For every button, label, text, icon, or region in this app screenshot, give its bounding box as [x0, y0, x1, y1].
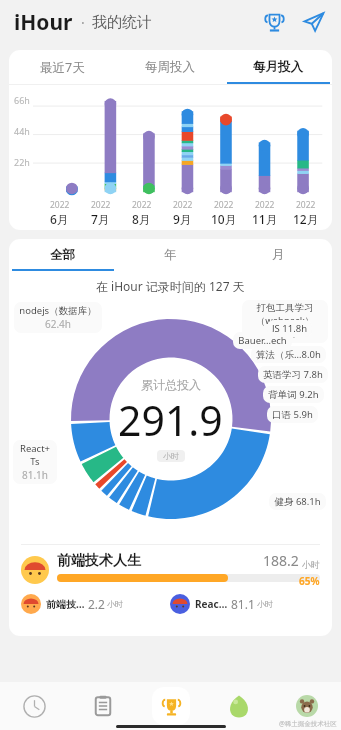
staticText: nodejs（数据库） — [19, 304, 97, 317]
staticText: Bauer…ech — [238, 334, 287, 347]
staticText: @稀土掘金技术社区 — [279, 719, 337, 728]
staticText: 7.2h — [275, 327, 296, 341]
button[interactable]: React+Ts — [13, 440, 57, 484]
staticText: 62.4h — [45, 317, 72, 331]
staticText: 算法（乐…8.0h — [256, 348, 321, 361]
staticText: 小时 — [302, 559, 320, 570]
button[interactable]: 最近7天 — [9, 50, 116, 84]
staticText: 291.9 — [118, 392, 223, 448]
staticText: 健身 68.1h — [274, 495, 321, 508]
button[interactable]: 前端技… — [21, 594, 170, 614]
staticText: 年 — [164, 247, 177, 263]
staticText: 81.1 — [231, 596, 255, 612]
staticText: 81.1h — [22, 468, 49, 482]
staticText: 月 — [272, 247, 285, 263]
button[interactable]: Clock — [0, 682, 69, 730]
staticText: 11月 — [252, 211, 278, 227]
staticText: 英语学习 7.8h — [263, 368, 323, 381]
button[interactable]: Profile — [273, 682, 341, 730]
button[interactable]: Focus — [205, 682, 273, 730]
staticText: 2022 — [173, 199, 193, 211]
staticText: 每月投入 — [253, 59, 303, 75]
staticText: 前端技术人生 — [57, 552, 141, 570]
button[interactable]: 健身 68.1h — [269, 493, 326, 510]
staticText: 在 iHour 记录时间的 127 天 — [96, 278, 245, 294]
staticText: 2.2 — [88, 596, 105, 612]
button[interactable]: 月 — [224, 239, 332, 271]
staticText: 2022 — [255, 199, 275, 211]
staticText: 9月 — [173, 211, 192, 227]
button[interactable]: 背单词 9.2h — [263, 386, 324, 403]
button[interactable]: Bauer…ech — [233, 332, 292, 349]
staticText: 8月 — [132, 211, 151, 227]
staticText: 2022 — [296, 199, 316, 211]
button[interactable]: 每月投入 — [224, 50, 332, 84]
staticText: 小时 — [107, 599, 123, 609]
button[interactable]: 算法（乐…8.0h — [251, 346, 326, 363]
staticText: 2022 — [91, 199, 111, 211]
staticText: 2022 — [132, 199, 152, 211]
staticText: 累计总投入 — [141, 377, 201, 392]
button[interactable]: 全部 — [9, 239, 116, 271]
staticText: 2022 — [50, 199, 70, 211]
button[interactable]: Achievements — [259, 7, 289, 37]
button[interactable]: nodejs（数据库） — [14, 302, 102, 333]
staticText: 前端技… — [46, 597, 85, 611]
staticText: JS 11.8h — [272, 322, 307, 335]
staticText: 44h — [14, 125, 30, 137]
staticText: iHour — [14, 8, 73, 37]
staticText: 65% — [299, 574, 320, 588]
button[interactable]: 口语 5.9h — [267, 406, 318, 423]
button[interactable]: 每周投入 — [116, 50, 224, 84]
staticText: 10月 — [211, 211, 237, 227]
staticText: 12月 — [293, 211, 319, 227]
staticText: Reac… — [195, 597, 228, 611]
staticText: 背单词 9.2h — [268, 388, 319, 401]
button[interactable]: 打包工具学习（webpack） — [242, 300, 328, 343]
staticText: 小时 — [257, 599, 273, 609]
staticText: 188.2 — [263, 551, 299, 570]
button[interactable]: Statistics — [137, 682, 205, 730]
staticText: 口语 5.9h — [272, 408, 313, 421]
staticText: · — [81, 13, 85, 32]
staticText: React+Ts — [18, 442, 52, 468]
staticText: 22h — [14, 156, 30, 168]
staticText: 7月 — [91, 211, 110, 227]
button[interactable]: Reac… — [170, 594, 320, 614]
button[interactable]: 年 — [116, 239, 224, 271]
button[interactable]: 前端技术人生 — [21, 551, 320, 588]
staticText: 打包工具学习（webpack） — [247, 302, 323, 327]
staticText: 我的统计 — [92, 13, 152, 32]
staticText: 每周投入 — [145, 59, 195, 75]
staticText: 6月 — [50, 211, 69, 227]
staticText: 2022 — [214, 199, 234, 211]
button[interactable]: Share — [299, 7, 329, 37]
staticText: 全部 — [50, 247, 75, 263]
staticText: 66h — [14, 94, 30, 106]
staticText: 最近7天 — [40, 59, 85, 76]
button[interactable]: Records — [69, 682, 137, 730]
button[interactable]: JS 11.8h — [267, 320, 312, 337]
staticText: 小时 — [163, 451, 179, 461]
button[interactable]: 英语学习 7.8h — [258, 366, 328, 383]
